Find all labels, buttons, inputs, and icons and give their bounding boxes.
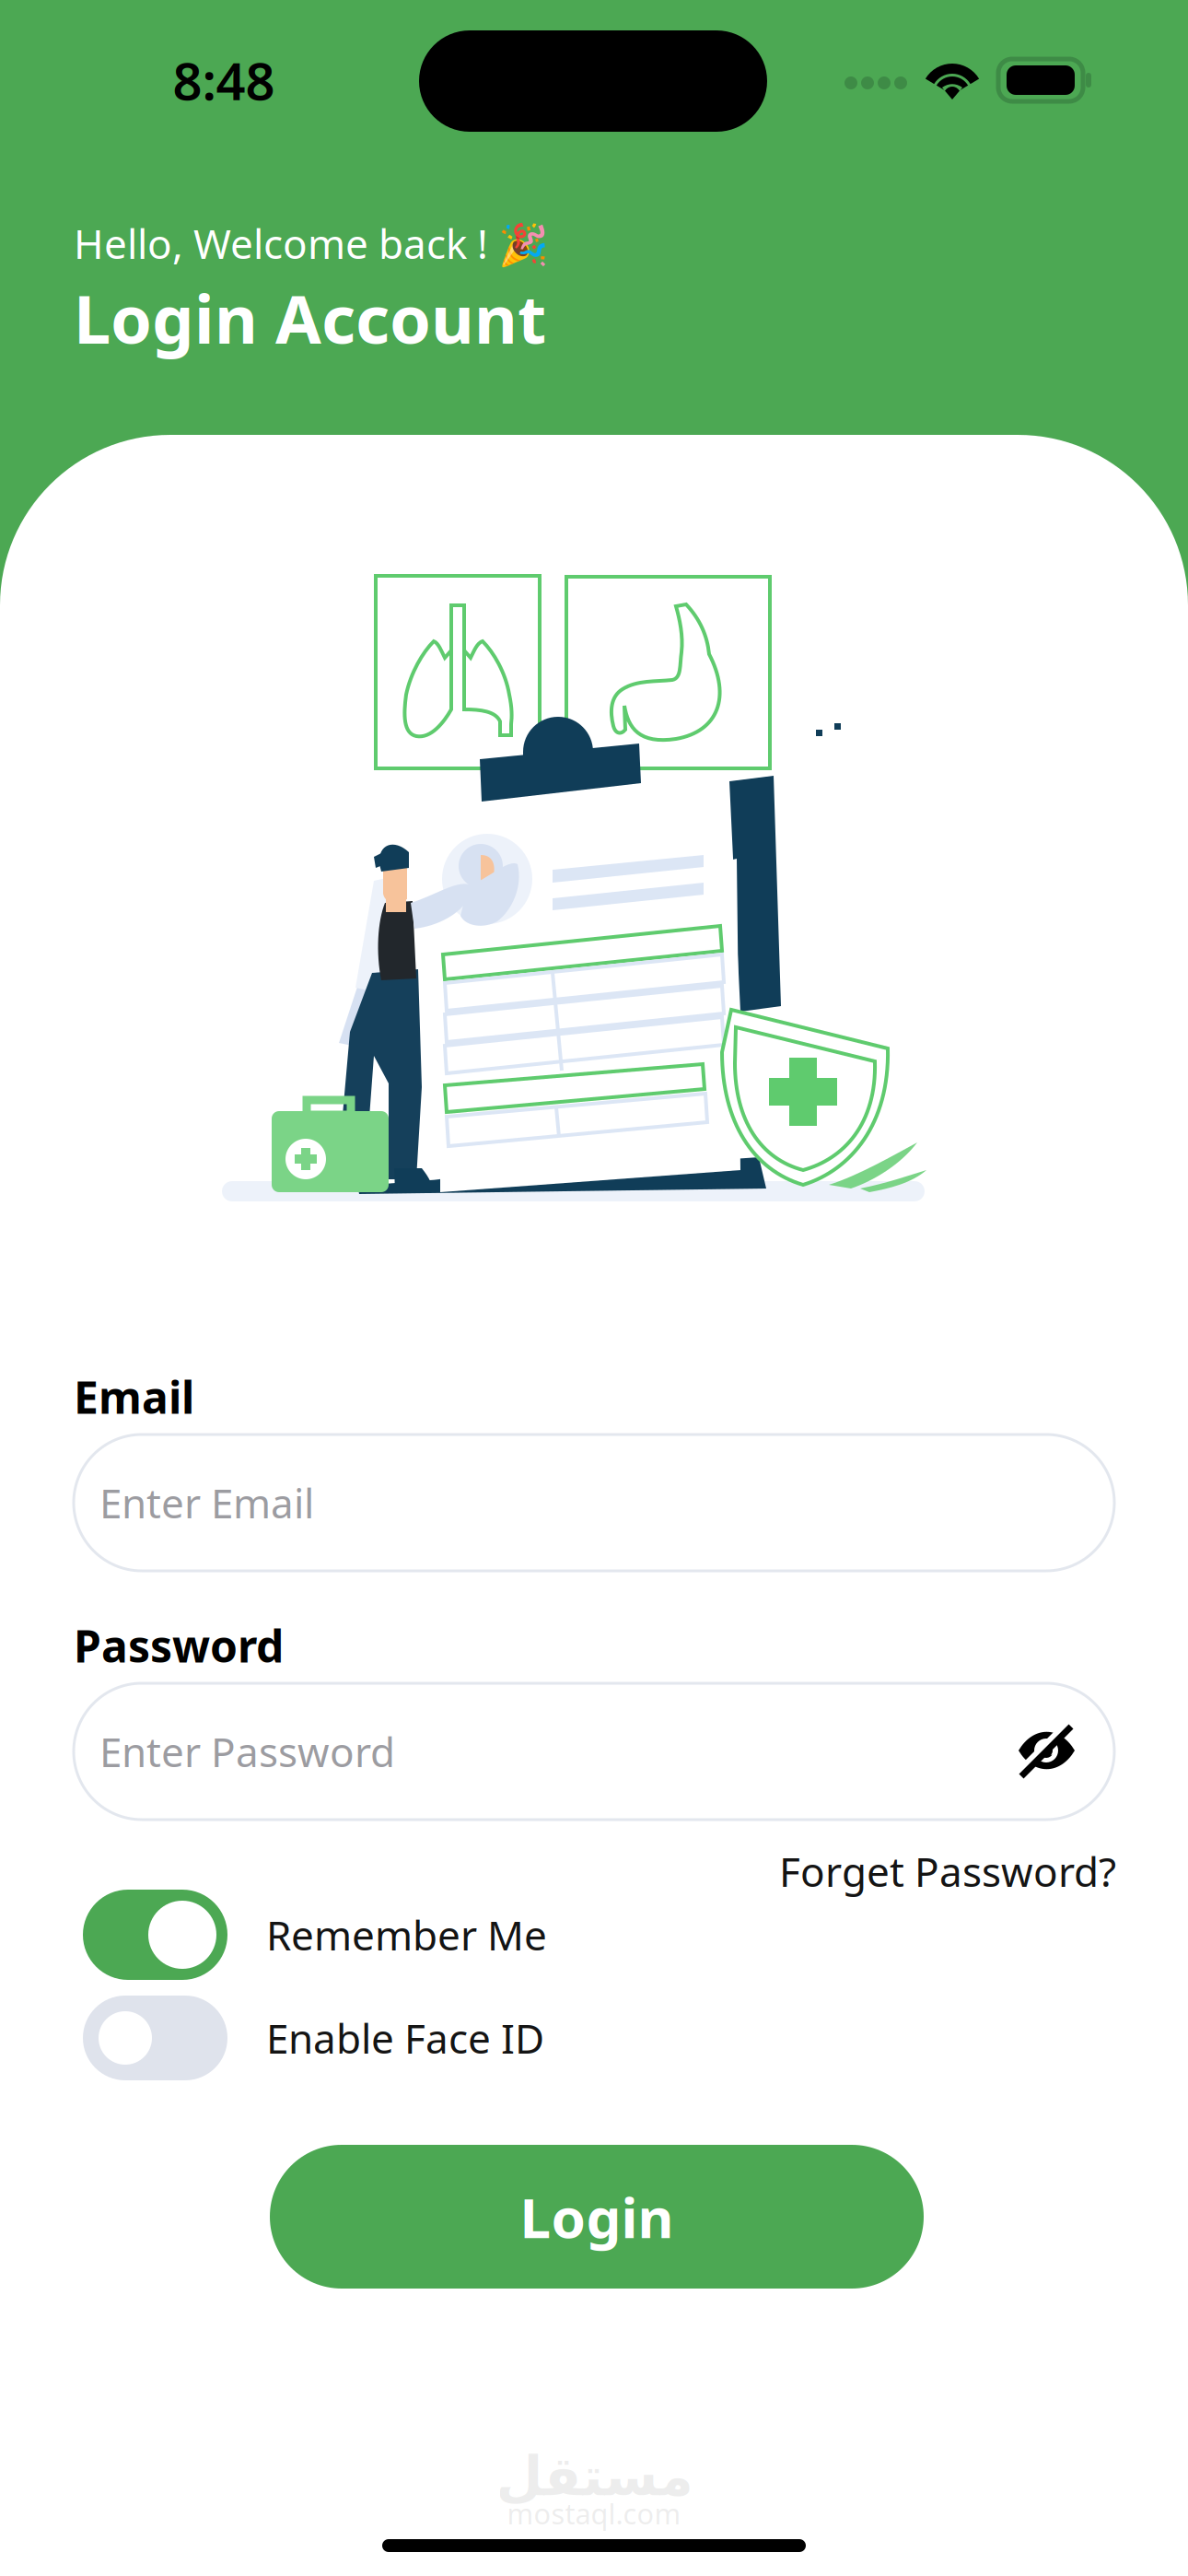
- staticText: Password: [74, 1616, 284, 1675]
- staticText: Enable Face ID: [266, 2011, 544, 2065]
- staticText: Enter Email: [99, 1476, 314, 1530]
- staticText: Email: [74, 1367, 194, 1426]
- staticText: مستقل: [495, 2446, 693, 2507]
- button[interactable]: Show password: [1015, 1722, 1079, 1781]
- staticText: Login: [520, 2180, 674, 2253]
- staticText: Login Account: [74, 274, 546, 362]
- staticText: Enter Password: [99, 1725, 395, 1778]
- button[interactable]: Enter Password: [74, 1683, 1114, 1820]
- staticText: Remember Me: [266, 1908, 547, 1962]
- staticText: Forget Password?: [779, 1844, 1116, 1898]
- button[interactable]: Remember Me: [83, 1890, 1096, 1980]
- button[interactable]: Login: [270, 2145, 924, 2289]
- button[interactable]: Enable Face ID: [83, 1993, 1096, 2083]
- button[interactable]: Forget Password?: [779, 1844, 1116, 1898]
- staticText: mostaql.com: [507, 2495, 681, 2532]
- staticText: Hello, Welcome back ! 🎉: [74, 216, 549, 270]
- button[interactable]: Enter Email: [74, 1434, 1114, 1571]
- staticText: 8:48: [173, 46, 275, 114]
